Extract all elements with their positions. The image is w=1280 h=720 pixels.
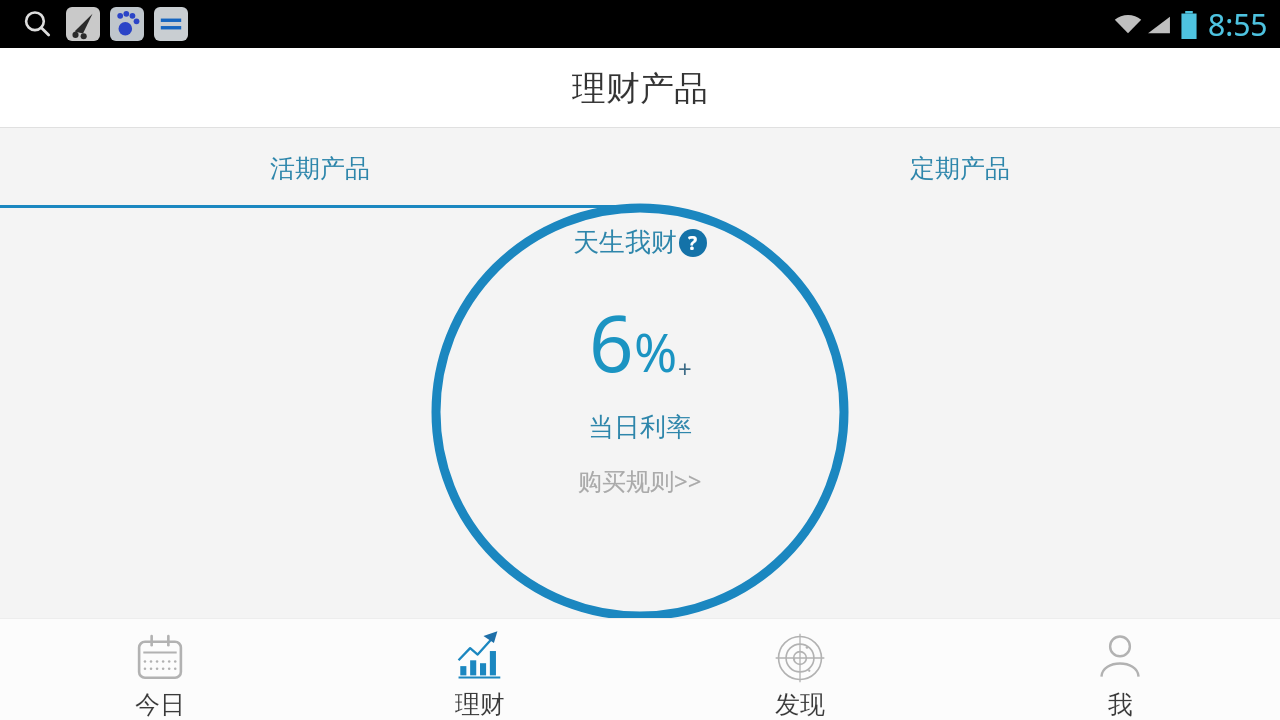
staticText: 活期产品	[270, 153, 370, 184]
staticText: 当日利率	[588, 411, 692, 444]
button[interactable]: 理财	[320, 619, 640, 720]
button[interactable]: 购买规则>>	[578, 464, 702, 497]
staticText: 发现	[775, 689, 825, 720]
staticText: 天生我财	[573, 226, 677, 259]
staticText: 我	[1108, 689, 1133, 720]
staticText: 定期产品	[910, 153, 1010, 184]
staticText: 8:55	[1208, 4, 1268, 45]
staticText: 购买规则>>	[578, 464, 702, 497]
button[interactable]: App	[66, 7, 100, 41]
button[interactable]: App	[154, 7, 188, 41]
button[interactable]: 今日	[0, 619, 320, 720]
button[interactable]: Help	[679, 229, 707, 257]
staticText: 今日	[135, 689, 185, 720]
staticText: +	[678, 352, 692, 385]
staticText: 理财	[455, 689, 505, 720]
button[interactable]: 活期产品	[0, 128, 640, 208]
staticText: %	[634, 316, 678, 387]
staticText: ?	[688, 230, 698, 256]
button[interactable]: App	[110, 7, 144, 41]
button[interactable]: 定期产品	[640, 128, 1280, 208]
button[interactable]: 发现	[640, 619, 960, 720]
staticText: 6	[589, 289, 634, 395]
button[interactable]: 我	[960, 619, 1280, 720]
staticText: 理财产品	[572, 67, 708, 110]
button[interactable]: Search	[20, 7, 54, 41]
